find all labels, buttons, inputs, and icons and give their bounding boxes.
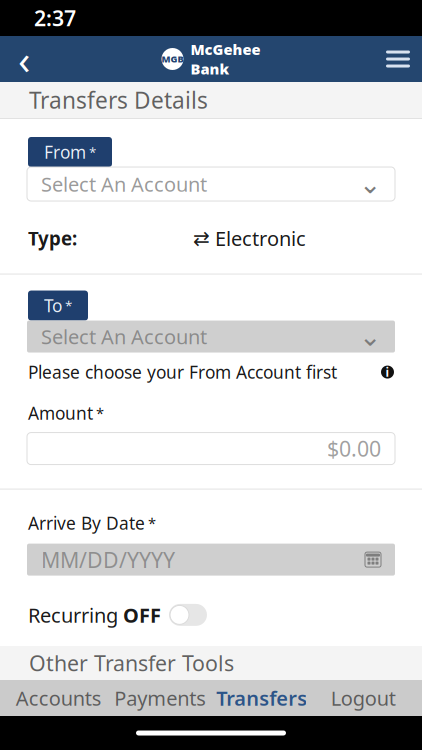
- staticText: Electronic: [215, 225, 306, 252]
- button[interactable]: Select An Account: [27, 167, 395, 201]
- button[interactable]: CLEAR: [215, 654, 303, 685]
- staticText: Other Transfer Tools: [29, 649, 234, 677]
- staticText: ⇄: [193, 227, 210, 250]
- staticText: 2:37: [34, 4, 76, 32]
- staticText: $0.00: [327, 434, 381, 463]
- staticText: Transfers: [216, 685, 307, 711]
- button[interactable]: Payments: [109, 680, 211, 716]
- button[interactable]: Logout: [312, 680, 414, 716]
- staticText: MM/DD/YYYY: [41, 545, 175, 574]
- button[interactable]: Accounts: [8, 680, 109, 716]
- staticText: ⌄: [359, 321, 381, 352]
- button[interactable]: Transfers: [211, 680, 312, 716]
- button[interactable]: Recurring: [28, 602, 394, 628]
- staticText: Please choose your From Account first: [28, 361, 337, 384]
- staticText: *: [148, 513, 156, 533]
- staticText: Amount: [28, 402, 93, 425]
- staticText: ‹: [18, 32, 30, 85]
- staticText: Accounts: [16, 685, 102, 711]
- staticText: Arrive By Date: [28, 512, 145, 535]
- staticText: Select An Account: [41, 171, 207, 197]
- staticText: Type:: [28, 226, 77, 251]
- button[interactable]: Menu: [374, 36, 422, 82]
- staticText: *: [89, 143, 96, 161]
- staticText: Select An Account: [41, 323, 207, 350]
- staticText: MGB: [161, 53, 183, 65]
- button[interactable]: NEXT: [317, 654, 395, 685]
- button[interactable]: MM/DD/YYYY: [27, 544, 395, 576]
- staticText: *: [96, 403, 104, 423]
- staticText: Recurring: [28, 602, 118, 628]
- staticText: Bank: [190, 59, 229, 78]
- button[interactable]: Select An Account: [27, 321, 395, 353]
- staticText: Transfers Details: [29, 85, 208, 115]
- staticText: OFF: [123, 602, 161, 628]
- button[interactable]: Back: [0, 36, 48, 82]
- staticText: ⌄: [359, 169, 381, 199]
- staticText: CLEAR: [229, 656, 288, 683]
- staticText: i: [385, 364, 389, 380]
- staticText: McGehee: [190, 39, 260, 59]
- staticText: From: [44, 140, 86, 163]
- staticText: Logout: [331, 685, 396, 711]
- staticText: *: [65, 297, 72, 314]
- staticText: Payments: [114, 685, 206, 711]
- staticText: To: [44, 294, 62, 317]
- staticText: NEXT: [331, 656, 380, 683]
